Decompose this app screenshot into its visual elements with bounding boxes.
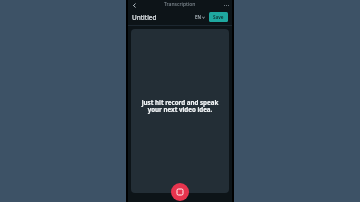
staticText: EN	[195, 14, 201, 20]
button[interactable]: Untitled	[132, 13, 157, 22]
staticText: Save	[213, 14, 224, 20]
button[interactable]: Save	[209, 12, 228, 22]
button[interactable]: Stop recording	[171, 183, 189, 201]
button[interactable]: More options	[222, 1, 230, 9]
button[interactable]: just hit record and speak your next vide…	[131, 29, 229, 193]
button[interactable]: EN	[194, 13, 206, 21]
staticText: just hit record and speak your next vide…	[136, 98, 224, 114]
button[interactable]: Back	[130, 1, 138, 9]
staticText: Transcription	[164, 1, 196, 8]
